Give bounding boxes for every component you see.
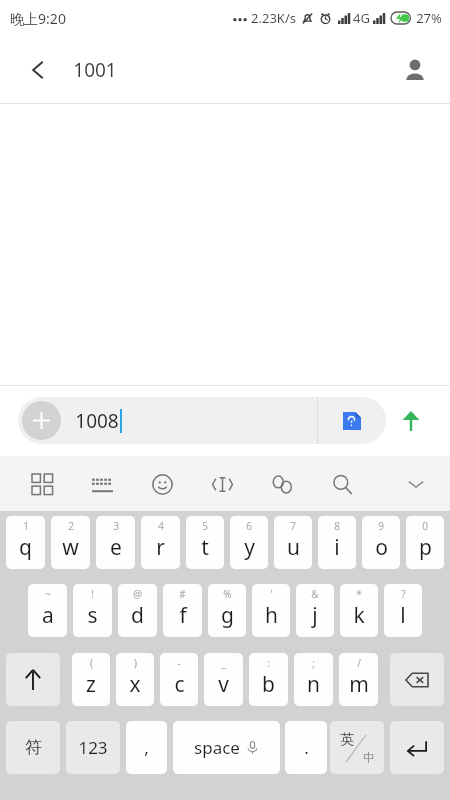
staticText: 符 [25,737,42,758]
staticText: 123 [78,736,108,759]
button[interactable]: 2 [51,516,90,569]
button[interactable]: Switch language [330,721,384,774]
button[interactable]: 1 [6,516,45,569]
staticText: ) [134,656,137,670]
staticText: 0 [422,519,428,533]
button[interactable]: # [163,584,202,637]
button[interactable]: Apps [12,459,72,509]
staticText: ; [312,656,315,670]
staticText: 3 [113,519,119,533]
staticText: 9 [378,519,384,533]
button[interactable]: / [339,653,378,706]
button[interactable]: 符 [6,721,60,774]
staticText: , [144,736,149,759]
button[interactable]: 6 [230,516,268,569]
button[interactable]: . [285,721,327,774]
staticText: _ [221,656,226,670]
button[interactable]: 9 [362,516,400,569]
staticText: ! [91,587,94,601]
staticText: y [244,533,255,562]
button[interactable]: space [173,721,280,774]
button[interactable]: Emoji [132,459,192,509]
button[interactable]: ? [384,584,422,637]
button[interactable]: 3 [96,516,135,569]
button[interactable]: 0 [406,516,444,569]
staticText: m [349,670,369,699]
staticText: i [334,533,340,562]
button[interactable]: Add attachment [22,401,61,440]
button[interactable]: : [249,653,288,706]
staticText: b [262,670,275,699]
button[interactable]: ( [72,653,110,706]
staticText: r [156,533,165,562]
staticText: 中 [363,750,375,765]
staticText: . [304,736,309,759]
button[interactable]: _ [204,653,243,706]
staticText: 7 [290,519,296,533]
button[interactable]: ; [294,653,333,706]
button[interactable]: Keyboard layout [72,459,132,509]
staticText: v [218,670,229,699]
button[interactable]: @ [118,584,157,637]
button[interactable]: ' [252,584,290,637]
staticText: 27% [416,9,442,27]
button[interactable]: Contact profile [394,49,436,91]
staticText: n [307,670,320,699]
button[interactable]: Add attachment [18,397,386,444]
button[interactable]: 8 [318,516,356,569]
staticText: z [86,670,96,699]
button[interactable]: ~ [28,584,67,637]
staticText: u [287,533,300,562]
button[interactable]: 123 [66,721,120,774]
button[interactable]: Enter [390,721,444,774]
staticText: @ [133,587,142,601]
staticText: f [179,601,187,630]
staticText: 5 [202,519,208,533]
staticText: 2.23K/s [251,9,296,27]
staticText: : [267,656,270,670]
button[interactable]: Back [18,50,58,90]
button[interactable]: 4 [141,516,180,569]
button[interactable]: * [340,584,378,637]
staticText: ? [401,587,406,601]
staticText: - [177,656,181,670]
button[interactable]: Clipboard text [192,459,252,509]
staticText: h [265,601,278,630]
button[interactable]: Link [252,459,312,509]
staticText: & [311,587,319,601]
staticText: x [129,670,141,699]
button[interactable]: Send [386,397,436,444]
staticText: 1001 [73,57,117,83]
button[interactable]: & [296,584,334,637]
button[interactable]: - [160,653,198,706]
staticText: s [87,601,98,630]
button[interactable]: Hide keyboard [394,462,438,506]
staticText: * [356,587,362,601]
staticText: p [419,533,432,562]
staticText: l [400,601,406,630]
button[interactable]: ! [73,584,112,637]
staticText: o [375,533,388,562]
staticText: 晚上9:20 [10,9,66,28]
staticText: 6 [246,519,252,533]
button[interactable]: Insert file [318,397,386,444]
staticText: 1008 [75,408,119,434]
button[interactable]: Shift [6,653,60,706]
button[interactable]: , [126,721,167,774]
button[interactable]: Backspace [390,653,444,706]
staticText: e [110,533,122,562]
button[interactable]: % [208,584,246,637]
staticText: # [179,587,186,601]
staticText: d [131,601,144,630]
staticText: / [357,656,361,670]
button[interactable]: 5 [186,516,224,569]
staticText: q [19,533,32,562]
staticText: w [62,533,79,562]
button[interactable]: 7 [274,516,312,569]
staticText: 8 [334,519,340,533]
staticText: 2 [68,519,74,533]
staticText: % [223,587,232,601]
button[interactable]: Search [312,459,372,509]
button[interactable]: ) [116,653,154,706]
staticText: ~ [45,587,51,601]
